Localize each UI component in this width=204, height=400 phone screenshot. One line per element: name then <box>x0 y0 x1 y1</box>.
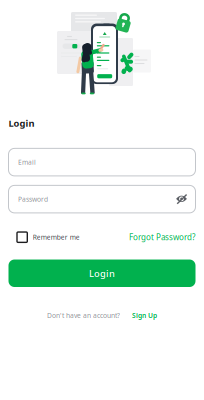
button[interactable]: Login <box>8 259 195 287</box>
staticText: Login <box>8 117 34 129</box>
staticText: Sign Up <box>132 311 157 320</box>
staticText: Forgot Password? <box>129 232 195 242</box>
staticText: Login <box>89 267 115 279</box>
staticText: Remember me <box>33 233 80 242</box>
staticText: Don't have an account? <box>47 311 120 320</box>
staticText: Email <box>18 158 36 167</box>
button[interactable]: Forgot Password? <box>129 232 195 242</box>
button[interactable]: Remember me <box>17 232 80 242</box>
button[interactable]: Sign Up <box>132 311 157 320</box>
staticText: Password <box>18 195 48 204</box>
